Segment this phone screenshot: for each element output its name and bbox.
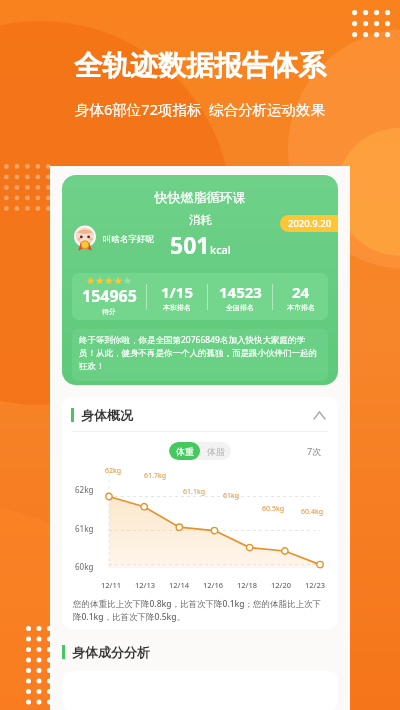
staticText: 62kg [75,484,94,495]
staticText: 得分 [102,307,116,316]
staticText: 12/18 [237,580,258,590]
staticText: 消耗 [189,213,212,227]
staticText: 12/16 [203,580,224,590]
button[interactable]: 快快燃脂循环课 [62,175,338,385]
staticText: 身体成分分析 [72,644,150,660]
staticText: 快快燃脂循环课 [62,189,338,205]
staticText: 24 [292,282,310,302]
staticText: 全国排名 [226,303,254,312]
staticText: 12/23 [305,580,326,590]
staticText: 14523 [219,282,262,302]
staticText: 终于等到你啦，你是全国第20766849名加入快快大家庭的学员！从此，健身不再是… [79,334,321,371]
staticText: 7次 [307,445,322,457]
staticText: 12/20 [271,580,292,590]
staticText: 61.1kg [183,487,205,497]
staticText: 体重 [176,446,194,457]
staticText: 154965 [82,285,137,307]
button[interactable]: Collapse [310,406,328,424]
staticText: 1/15 [161,282,193,302]
staticText: 61.7kg [144,471,166,481]
staticText: 叫啥名字好呢 [103,234,154,245]
button[interactable]: 体脂 [200,442,231,460]
staticText: kcal [210,242,231,257]
staticText: 61kg [223,491,240,501]
staticText: 61kg [75,523,94,534]
staticText: 501 [170,229,210,260]
staticText: 12/13 [135,580,156,590]
staticText: 全轨迹数据报告体系 [74,48,326,83]
staticText: 身体概况 [81,407,133,423]
staticText: 60.4kg [301,507,323,517]
staticText: 身体6部位72项指标 综合分析运动效果 [75,99,325,119]
staticText: 本市排名 [287,303,315,312]
staticText: 2020.9.20 [288,217,332,230]
button[interactable]: 体重 [169,442,200,460]
staticText: 62kg [105,466,122,476]
staticText: 12/14 [169,580,190,590]
staticText: 本班排名 [163,303,191,312]
staticText: 60.5kg [262,504,284,514]
staticText: 60kg [75,561,94,572]
staticText: 12/11 [101,580,122,590]
staticText: 体脂 [207,446,225,457]
staticText: 您的体重比上次下降0.8kg，比首次下降0.1kg；您的体脂比上次下降0.1kg… [73,598,327,623]
